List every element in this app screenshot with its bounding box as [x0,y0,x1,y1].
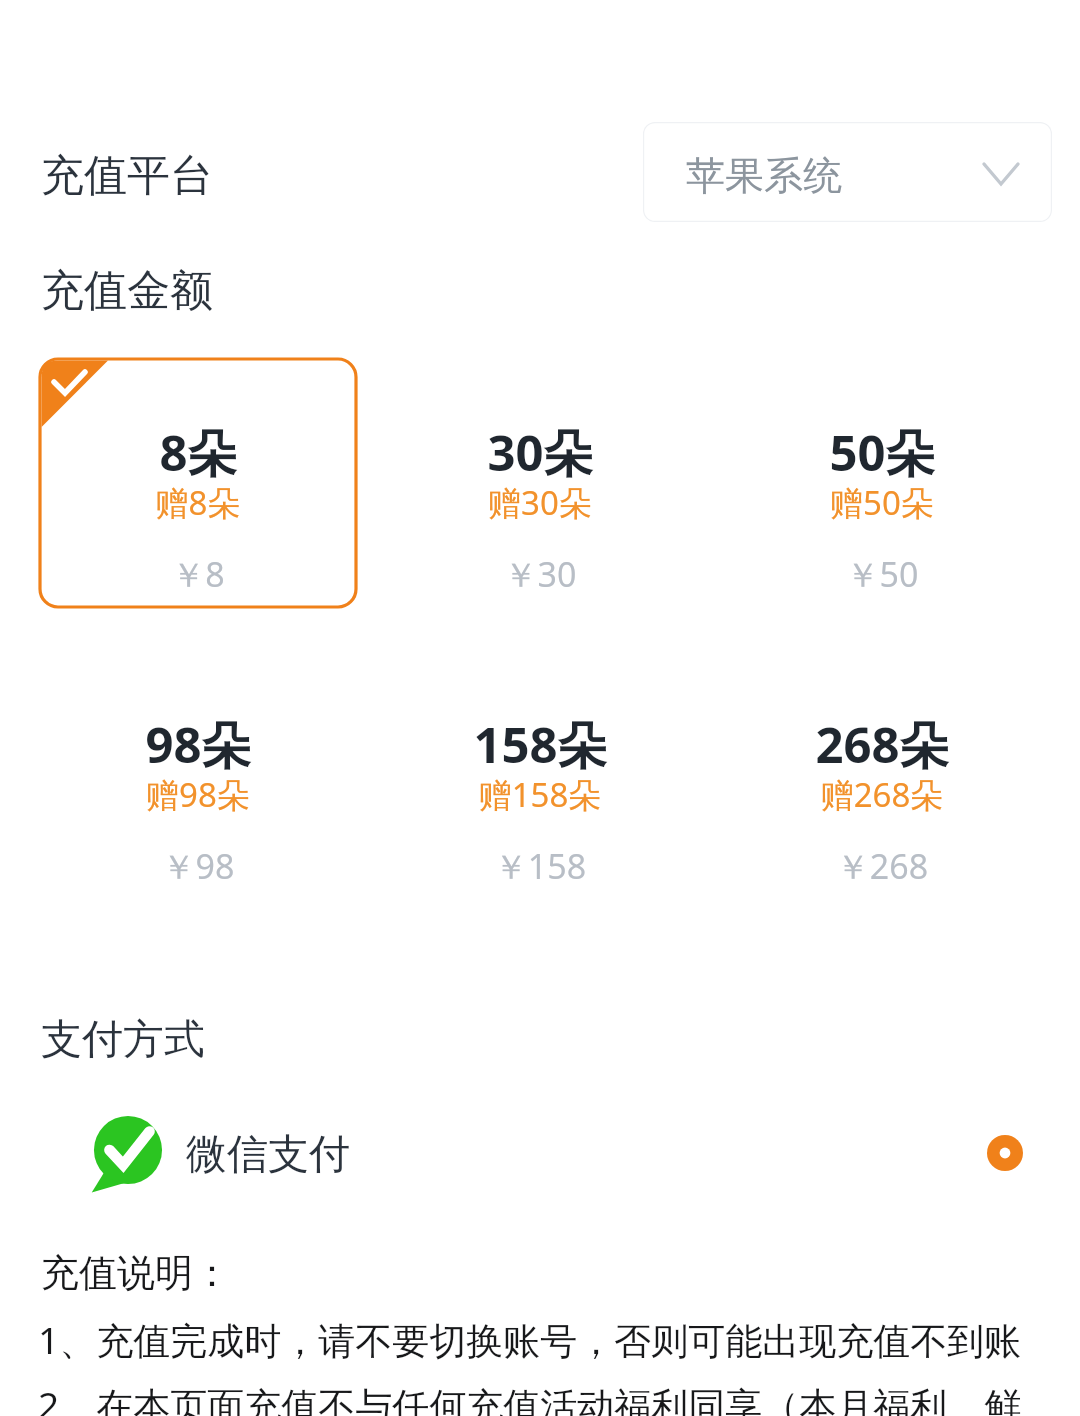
staticText: 158朵 [382,711,698,778]
button[interactable]: 微信支付 [0,1100,1080,1208]
staticText: 1、充值完成时，请不要切换账号，否则可能出现充值不到账的情况 [38,1314,1058,1365]
staticText: 赠158朵 [382,772,698,817]
staticText: 赠30朵 [382,480,698,525]
staticText: ￥30 [382,551,698,597]
button[interactable]: 8朵 [40,359,356,607]
staticText: 8朵 [40,419,356,486]
staticText: ￥8 [40,551,356,597]
button[interactable]: 苹果系统 [643,122,1052,222]
staticText: 98朵 [40,711,356,778]
staticText: 充值金额 [41,264,213,318]
staticText: ￥268 [724,843,1040,889]
button[interactable]: 158朵 [382,651,698,899]
staticText: 微信支付 [186,1129,350,1181]
staticText: ￥50 [724,551,1040,597]
staticText: 50朵 [724,419,1040,486]
staticText: ￥98 [40,843,356,889]
staticText: 30朵 [382,419,698,486]
button[interactable]: 268朵 [724,651,1040,899]
staticText: 赠268朵 [724,772,1040,817]
staticText: 支付方式 [41,1014,205,1066]
staticText: 充值平台 [41,149,213,203]
button[interactable]: 98朵 [40,651,356,899]
staticText: 赠98朵 [40,772,356,817]
staticText: 赠50朵 [724,480,1040,525]
staticText: ￥158 [382,843,698,889]
other: Expand platform selector [984,164,1018,184]
staticText: 268朵 [724,711,1040,778]
staticText: 赠8朵 [40,480,356,525]
staticText: 苹果系统 [686,151,842,200]
staticText: 充值说明： [41,1249,231,1297]
staticText: 2、在本页面充值不与任何充值活动福利同享（本月福利、鲜花充 [38,1379,1058,1416]
button[interactable]: 50朵 [724,359,1040,607]
button[interactable]: 30朵 [382,359,698,607]
other: WeChat Pay selected [987,1135,1023,1171]
